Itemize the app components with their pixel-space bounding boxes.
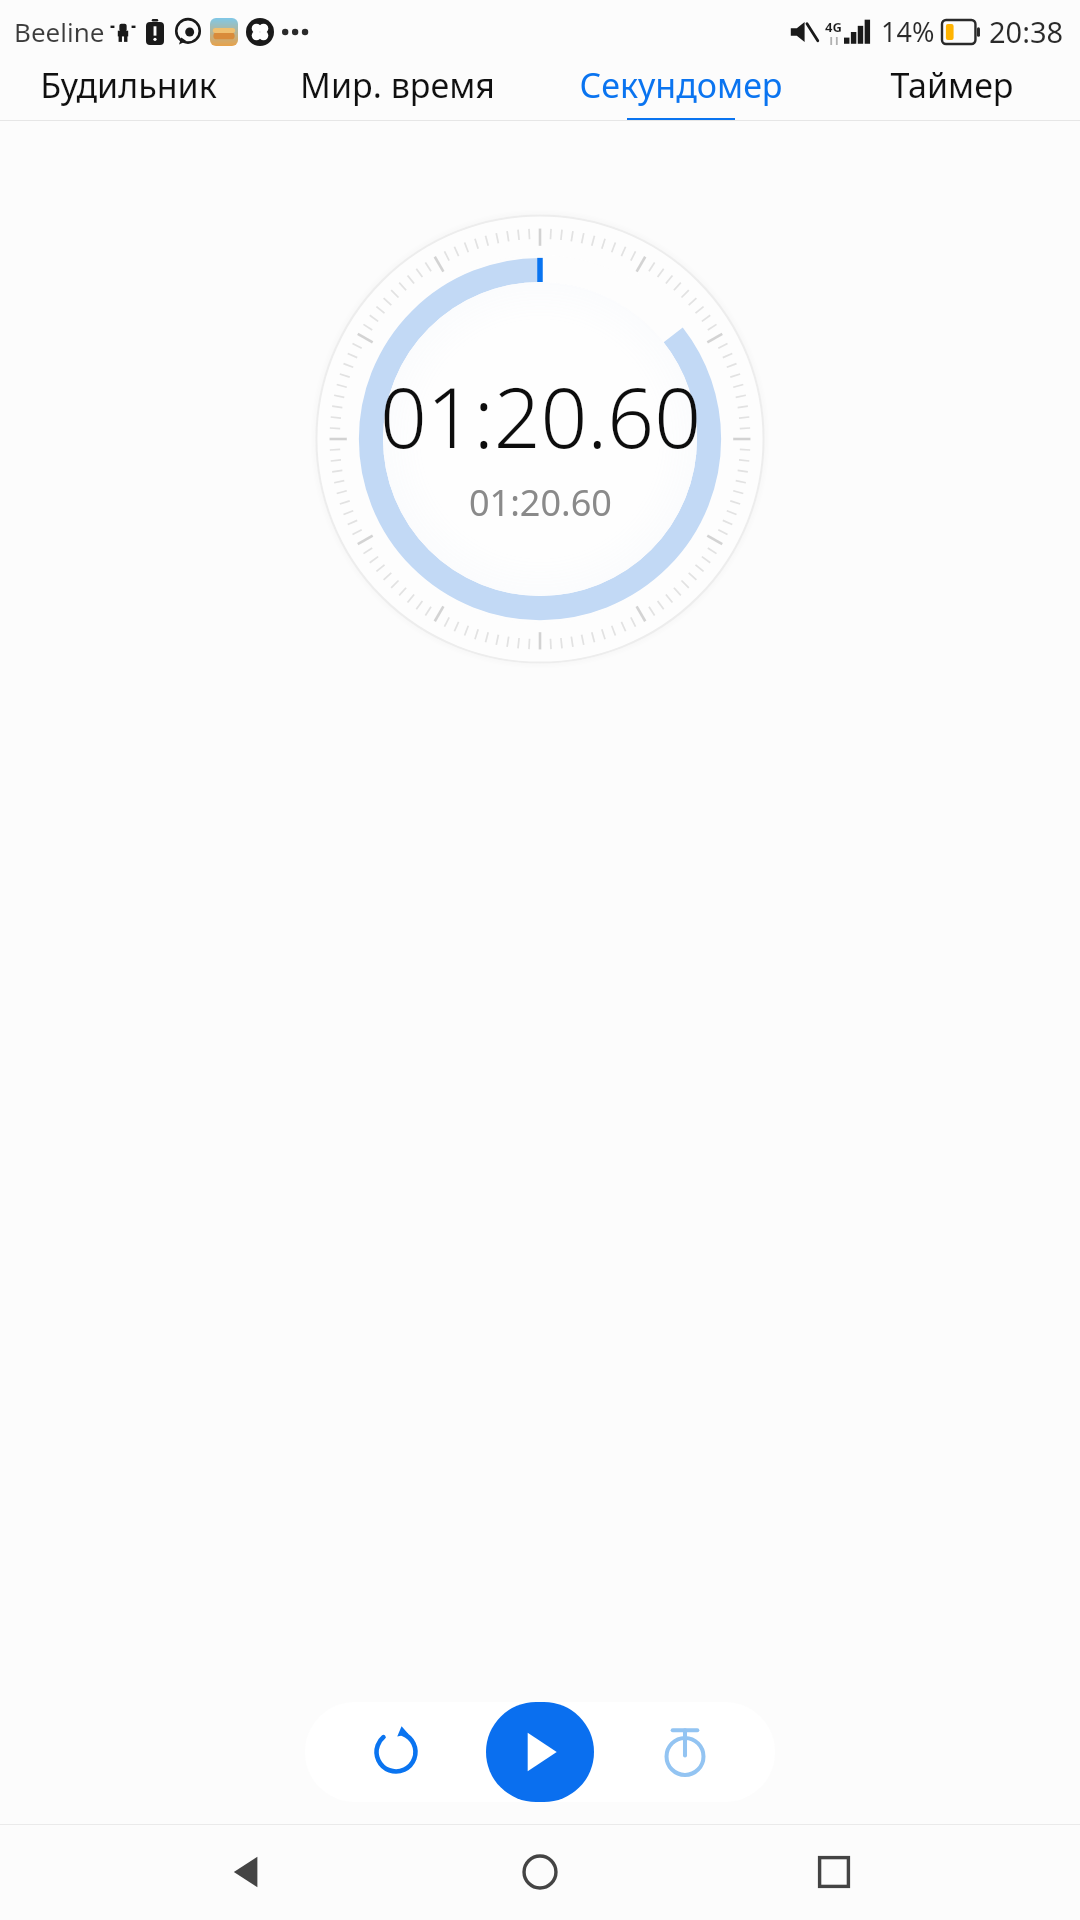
- staticText: 20:38: [989, 12, 1064, 51]
- staticText: 14%: [881, 13, 935, 50]
- button[interactable]: Reset: [350, 1706, 442, 1798]
- button[interactable]: Recents: [786, 1824, 882, 1920]
- staticText: Секундомер: [579, 62, 783, 108]
- staticText: Таймер: [890, 62, 1014, 108]
- staticText: Мир. время: [300, 62, 495, 108]
- staticText: 01:20.60: [469, 478, 612, 527]
- staticText: 4G: [825, 18, 842, 36]
- staticText: Beeline: [14, 14, 105, 49]
- button[interactable]: Секундомер: [539, 62, 823, 120]
- button[interactable]: Будильник: [0, 62, 256, 120]
- button[interactable]: Мир. время: [256, 62, 539, 120]
- button[interactable]: Home: [492, 1824, 588, 1920]
- button[interactable]: Start: [486, 1702, 594, 1802]
- button[interactable]: Back: [198, 1824, 294, 1920]
- button[interactable]: Lap: [639, 1706, 731, 1798]
- staticText: 01:20.60: [380, 360, 701, 472]
- button[interactable]: Таймер: [823, 62, 1080, 120]
- staticText: Будильник: [40, 62, 217, 108]
